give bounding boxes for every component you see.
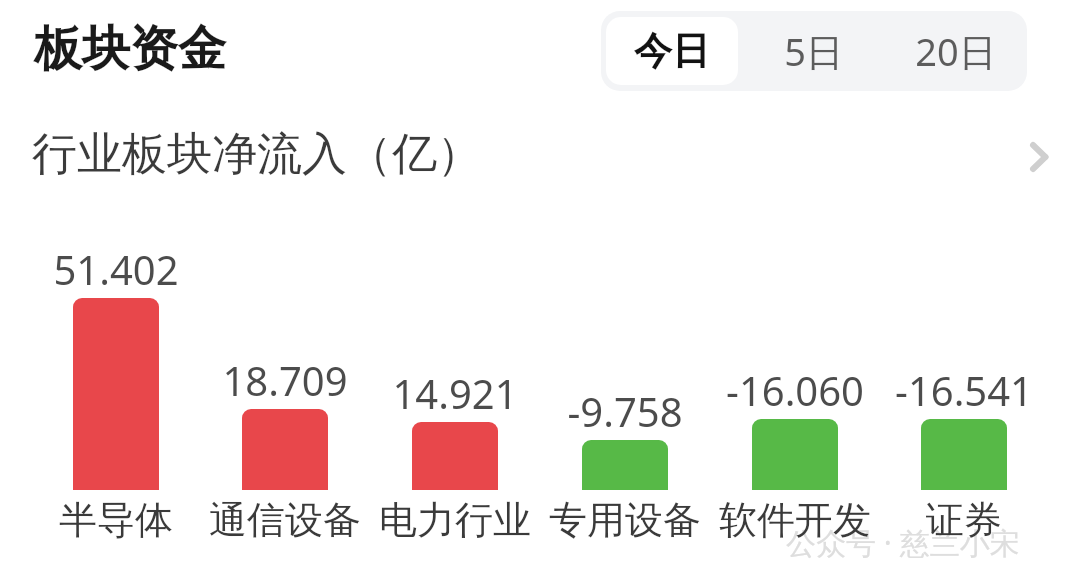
staticText: -16.541 xyxy=(895,363,1033,417)
button[interactable]: 今日 xyxy=(606,17,738,85)
button[interactable]: 电力行业 14.921 xyxy=(412,422,498,490)
button[interactable]: 专用设备 -9.758 xyxy=(582,440,668,490)
staticText: 半导体 xyxy=(59,496,173,544)
button[interactable]: 通信设备 18.709 xyxy=(242,409,328,490)
staticText: 专用设备 xyxy=(549,496,701,544)
staticText: 公众号 · 慈兰小宋 xyxy=(786,522,1020,563)
staticText: -16.060 xyxy=(726,363,864,417)
staticText: 今日 xyxy=(634,27,710,75)
button[interactable]: 软件开发 -16.060 xyxy=(752,419,838,490)
staticText: 20日 xyxy=(915,25,997,77)
button[interactable]: 证券 -16.541 xyxy=(921,419,1007,490)
staticText: 证券 xyxy=(926,496,1002,544)
staticText: 板块资金 xyxy=(34,19,226,79)
button[interactable]: 半导体 51.402 xyxy=(73,298,159,490)
button[interactable]: 展开更多 xyxy=(1008,126,1070,188)
staticText: 14.921 xyxy=(392,366,518,420)
button[interactable]: 5日 xyxy=(748,17,880,85)
staticText: 5日 xyxy=(784,25,844,77)
staticText: 51.402 xyxy=(53,242,179,296)
staticText: 通信设备 xyxy=(209,496,361,544)
staticText: 电力行业 xyxy=(379,496,531,544)
button[interactable]: 20日 xyxy=(890,17,1022,85)
staticText: -9.758 xyxy=(567,384,683,438)
staticText: 18.709 xyxy=(222,353,348,407)
staticText: 行业板块净流入（亿） xyxy=(32,126,482,183)
staticText: 软件开发 xyxy=(719,496,871,544)
